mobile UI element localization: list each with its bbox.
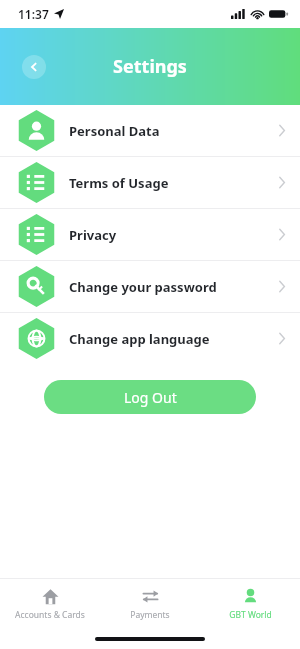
staticText: Personal Data bbox=[69, 122, 160, 140]
staticText: GBT World bbox=[229, 609, 272, 621]
staticText: Log Out bbox=[124, 388, 177, 407]
button[interactable]: Privacy bbox=[0, 209, 300, 260]
button[interactable]: Accounts & Cards bbox=[0, 584, 100, 625]
staticText: Payments bbox=[130, 609, 170, 621]
staticText: 11:37 bbox=[18, 6, 49, 22]
button[interactable]: Personal Data bbox=[0, 105, 300, 156]
staticText: Settings bbox=[113, 54, 187, 79]
button[interactable]: GBT World bbox=[200, 584, 300, 625]
button[interactable]: Payments bbox=[100, 584, 200, 625]
button[interactable]: Back bbox=[22, 55, 46, 79]
staticText: Terms of Usage bbox=[69, 174, 169, 192]
button[interactable]: Log Out bbox=[44, 380, 256, 414]
staticText: Accounts & Cards bbox=[15, 609, 85, 621]
staticText: Change app language bbox=[69, 330, 210, 348]
button[interactable]: Change your password bbox=[0, 261, 300, 312]
button[interactable]: Change app language bbox=[0, 313, 300, 364]
staticText: Privacy bbox=[69, 226, 117, 244]
button[interactable]: Terms of Usage bbox=[0, 157, 300, 208]
staticText: Change your password bbox=[69, 278, 217, 296]
